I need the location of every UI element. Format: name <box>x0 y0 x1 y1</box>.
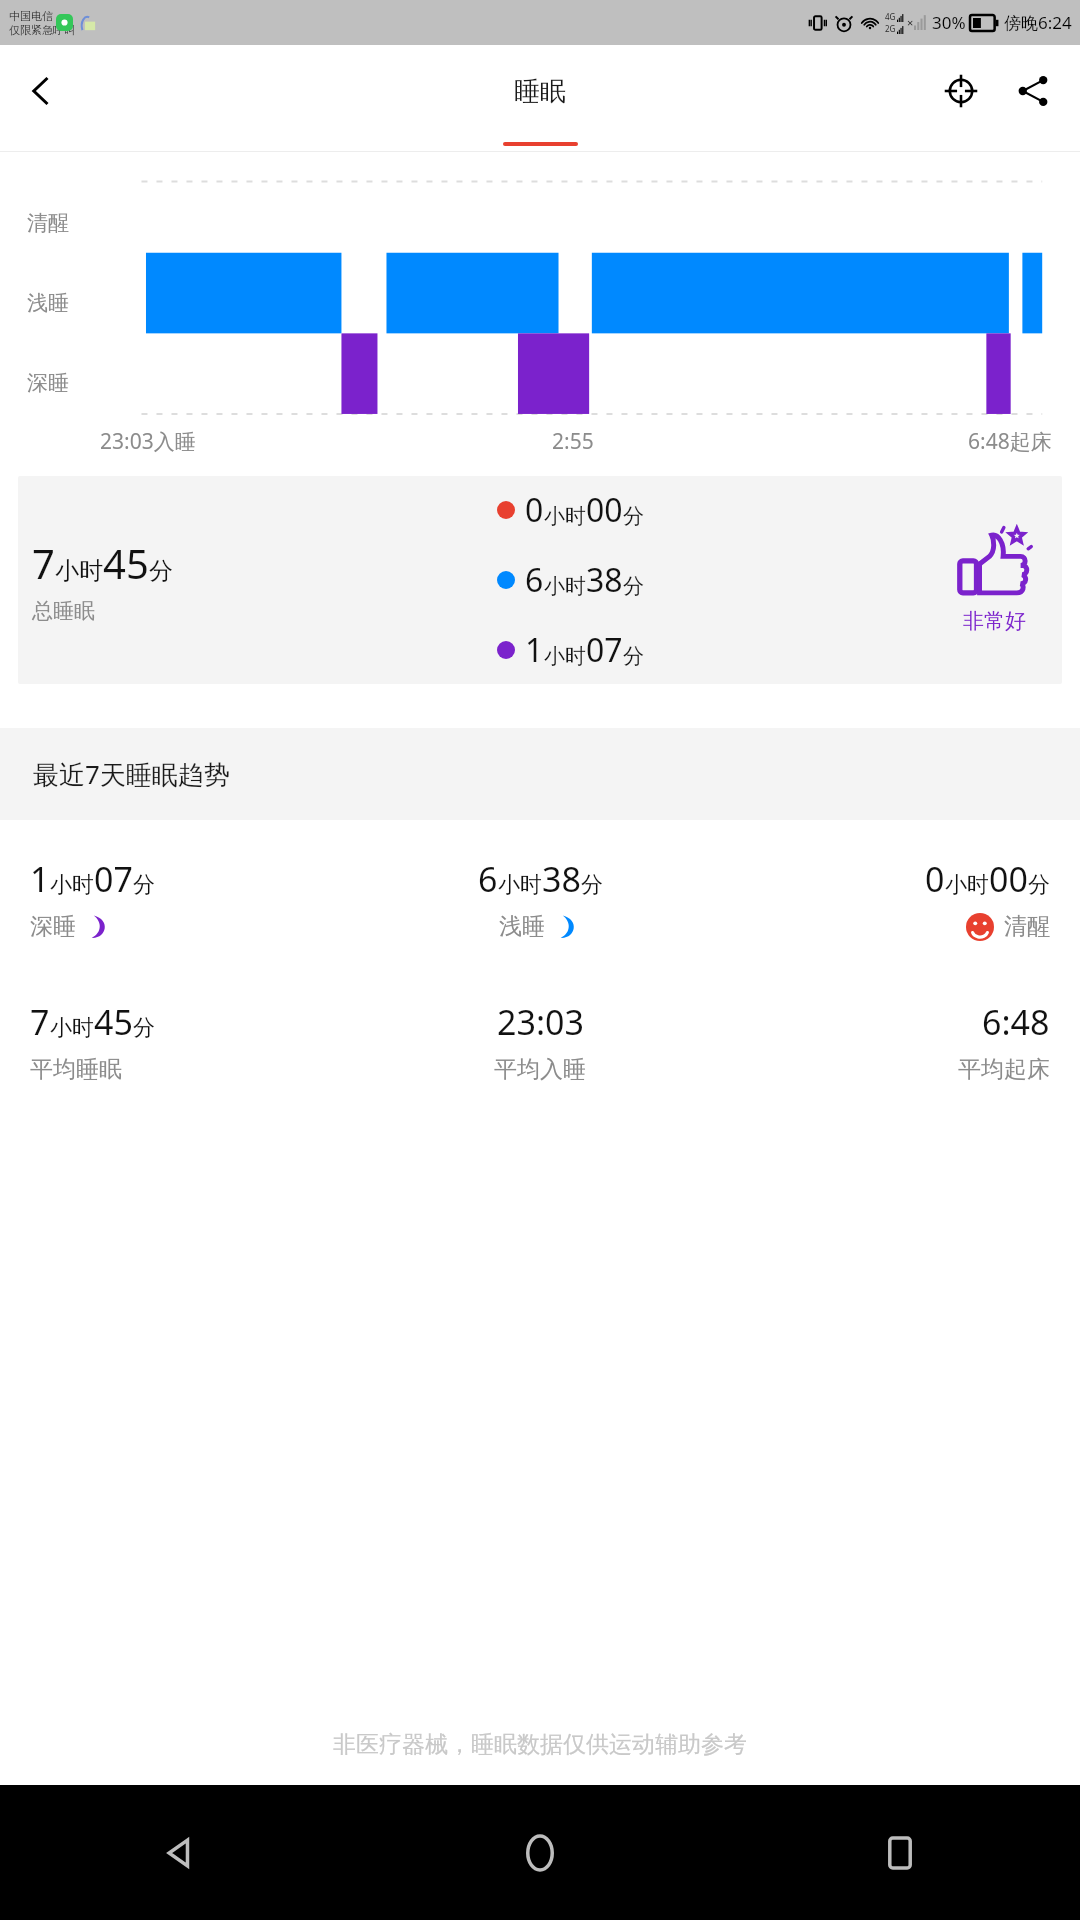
button[interactable] <box>503 142 578 146</box>
staticText: 2G <box>885 23 896 34</box>
staticText: 非医疗器械，睡眠数据仅供运动辅助参考 <box>333 1730 747 1759</box>
button[interactable]: Home <box>360 1785 720 1920</box>
staticText: 分 <box>133 871 155 899</box>
button[interactable]: 6:48 <box>710 999 1050 1084</box>
staticText: 小时 <box>50 871 94 899</box>
button[interactable]: 0 <box>710 856 1050 941</box>
staticText: 非常好 <box>963 608 1026 634</box>
staticText: 清醒 <box>1004 912 1050 941</box>
staticText: 仅限紧急呼叫 <box>9 23 75 37</box>
staticText: 分 <box>623 503 644 529</box>
staticText: 6:48起床 <box>968 427 1052 456</box>
staticText: 7 <box>32 536 55 590</box>
staticText: 0 <box>925 856 945 902</box>
staticText: 分 <box>581 871 603 899</box>
staticText: 深睡 <box>30 912 76 941</box>
button[interactable]: Back <box>10 60 72 122</box>
staticText: 总睡眠 <box>32 598 95 624</box>
staticText: 1 <box>30 856 50 902</box>
button[interactable]: 7 <box>30 999 370 1084</box>
button[interactable]: Recents <box>720 1785 1080 1920</box>
staticText: 平均入睡 <box>494 1055 586 1084</box>
staticText: 分 <box>1028 871 1050 899</box>
staticText: 小时 <box>498 871 542 899</box>
staticText: 30% <box>932 11 966 34</box>
button[interactable]: Locate <box>932 62 990 120</box>
staticText: 分 <box>133 1014 155 1042</box>
staticText: 中国电信 <box>9 9 53 23</box>
staticText: 小时 <box>544 503 586 529</box>
staticText: 分 <box>623 573 644 599</box>
staticText: 小时 <box>544 643 586 669</box>
staticText: 小时 <box>55 556 103 586</box>
staticText: 00 <box>586 488 623 532</box>
staticText: 45 <box>94 999 133 1045</box>
staticText: 清醒 <box>27 210 69 236</box>
staticText: 小时 <box>544 573 586 599</box>
staticText: 7 <box>30 999 50 1045</box>
staticText: 07 <box>586 628 623 672</box>
button[interactable]: 1 <box>30 856 370 941</box>
staticText: 分 <box>149 556 173 586</box>
staticText: 6 <box>525 558 544 602</box>
button[interactable]: 6 <box>370 856 710 941</box>
staticText: 1 <box>525 628 544 672</box>
staticText: 小时 <box>50 1014 94 1042</box>
staticText: 平均睡眠 <box>30 1055 122 1084</box>
staticText: 07 <box>94 856 133 902</box>
staticText: 最近7天睡眠趋势 <box>33 756 230 792</box>
staticText: 23:03入睡 <box>100 427 196 456</box>
staticText: 4G <box>885 11 896 22</box>
staticText: 38 <box>586 558 623 602</box>
staticText: 傍晚6:24 <box>1004 11 1072 34</box>
staticText: 睡眠 <box>514 75 566 108</box>
staticText: 浅睡 <box>499 912 545 941</box>
button[interactable]: 7 <box>18 476 1062 684</box>
staticText: 0 <box>525 488 544 532</box>
staticText: 38 <box>542 856 581 902</box>
button[interactable]: Back <box>0 1785 360 1920</box>
staticText: 平均起床 <box>958 1055 1050 1084</box>
staticText: 00 <box>989 856 1028 902</box>
staticText: 小时 <box>945 871 989 899</box>
staticText: 45 <box>103 536 149 590</box>
staticText: 深睡 <box>27 370 69 396</box>
staticText: 23:03 <box>497 999 584 1045</box>
staticText: 6 <box>478 856 498 902</box>
staticText: 2:55 <box>552 427 594 456</box>
staticText: × <box>907 15 914 30</box>
staticText: 分 <box>623 643 644 669</box>
button[interactable]: 23:03 <box>370 999 710 1084</box>
staticText: 6:48 <box>982 999 1050 1045</box>
button[interactable]: Share <box>1004 62 1062 120</box>
staticText: 浅睡 <box>27 290 69 316</box>
